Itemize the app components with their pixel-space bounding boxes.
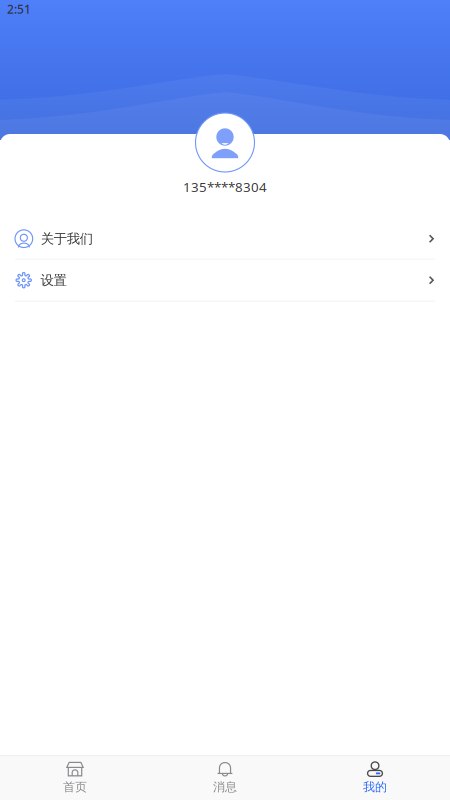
button[interactable]: 设置 (0, 260, 450, 301)
button[interactable]: 我的 (300, 756, 450, 800)
staticText: 消息 (213, 779, 237, 794)
staticText: 135****8304 (183, 178, 267, 196)
staticText: 关于我们 (41, 230, 93, 247)
staticText: 设置 (40, 272, 66, 288)
button[interactable]: 关于我们 (0, 219, 450, 259)
staticText: 我的 (363, 779, 387, 794)
staticText: 首页 (63, 779, 87, 794)
button[interactable]: 消息 (150, 756, 300, 800)
button[interactable]: 首页 (0, 756, 150, 800)
staticText: 2:51 (7, 1, 31, 17)
